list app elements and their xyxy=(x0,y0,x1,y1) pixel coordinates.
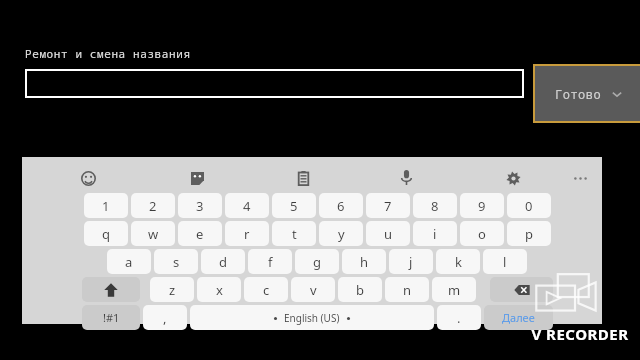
button[interactable]: p xyxy=(507,221,551,246)
staticText: h xyxy=(360,253,369,271)
staticText: Готово xyxy=(555,86,602,102)
staticText: Далее xyxy=(502,310,535,325)
staticText: v xyxy=(310,281,317,299)
button[interactable]: b xyxy=(338,277,382,302)
staticText: English (US) xyxy=(284,311,340,325)
button[interactable]: z xyxy=(150,277,194,302)
button[interactable]: !#1 xyxy=(82,305,140,330)
staticText: q xyxy=(102,225,110,243)
staticText: t xyxy=(292,225,297,243)
staticText: 7 xyxy=(384,197,392,215)
staticText: x xyxy=(216,281,223,299)
staticText: 9 xyxy=(478,197,486,215)
button[interactable]: 9 xyxy=(460,193,504,218)
staticText: 0 xyxy=(525,197,533,215)
button[interactable]: f xyxy=(248,249,292,274)
staticText: u xyxy=(384,225,393,243)
button[interactable]: , xyxy=(143,305,187,330)
button[interactable]: 5 xyxy=(272,193,316,218)
staticText: m xyxy=(448,281,461,299)
button[interactable]: 2 xyxy=(131,193,175,218)
button[interactable]: Далее xyxy=(484,305,553,330)
staticText: 3 xyxy=(196,197,204,215)
staticText: j xyxy=(409,253,413,271)
staticText: r xyxy=(244,225,250,243)
button[interactable]: c xyxy=(244,277,288,302)
staticText: l xyxy=(503,253,507,271)
button[interactable]: 4 xyxy=(225,193,269,218)
staticText: i xyxy=(433,225,437,243)
button[interactable]: 3 xyxy=(178,193,222,218)
button[interactable]: u xyxy=(366,221,410,246)
button[interactable]: Готово xyxy=(533,64,640,123)
button[interactable]: r xyxy=(225,221,269,246)
button[interactable]: j xyxy=(389,249,433,274)
staticText: f xyxy=(268,253,273,271)
button[interactable]: 6 xyxy=(319,193,363,218)
button[interactable]: t xyxy=(272,221,316,246)
staticText: k xyxy=(455,253,462,271)
button[interactable]: d xyxy=(201,249,245,274)
button[interactable]: Stickers xyxy=(184,165,210,191)
staticText: !#1 xyxy=(103,310,120,325)
button[interactable]: . xyxy=(437,305,481,330)
staticText: V RECORDER xyxy=(520,324,640,344)
staticText: s xyxy=(173,253,180,271)
staticText: 5 xyxy=(290,197,298,215)
staticText: d xyxy=(219,253,227,271)
button[interactable]: y xyxy=(319,221,363,246)
staticText: a xyxy=(125,253,133,271)
button[interactable]: 7 xyxy=(366,193,410,218)
button[interactable]: x xyxy=(197,277,241,302)
button[interactable]: l xyxy=(483,249,527,274)
button[interactable]: s xyxy=(154,249,198,274)
button[interactable]: i xyxy=(413,221,457,246)
button[interactable]: Settings xyxy=(500,165,526,191)
button[interactable]: Shift xyxy=(82,277,140,302)
staticText: g xyxy=(313,253,321,271)
button[interactable]: 1 xyxy=(84,193,128,218)
button[interactable]: g xyxy=(295,249,339,274)
button[interactable]: o xyxy=(460,221,504,246)
button[interactable]: More options xyxy=(567,165,593,191)
staticText: , xyxy=(163,309,167,327)
button[interactable]: Emoji xyxy=(75,165,101,191)
staticText: 6 xyxy=(337,197,345,215)
staticText: c xyxy=(263,281,270,299)
button[interactable]: q xyxy=(84,221,128,246)
button[interactable]: w xyxy=(131,221,175,246)
button[interactable]: n xyxy=(385,277,429,302)
button[interactable]: Backspace xyxy=(490,277,553,302)
button[interactable]: a xyxy=(107,249,151,274)
staticText: 2 xyxy=(149,197,157,215)
staticText: z xyxy=(169,281,176,299)
button[interactable]: Clipboard xyxy=(290,165,316,191)
staticText: 4 xyxy=(243,197,251,215)
staticText: 1 xyxy=(102,197,110,215)
button[interactable]: h xyxy=(342,249,386,274)
button[interactable]: English (US) xyxy=(190,305,434,330)
button[interactable]: m xyxy=(432,277,476,302)
button[interactable]: 8 xyxy=(413,193,457,218)
staticText: y xyxy=(338,225,345,243)
staticText: . xyxy=(457,309,461,327)
staticText: n xyxy=(403,281,412,299)
staticText: 8 xyxy=(431,197,439,215)
button[interactable]: e xyxy=(178,221,222,246)
staticText: Ремонт и смена названия xyxy=(25,46,191,61)
staticText: e xyxy=(196,225,204,243)
button[interactable]: v xyxy=(291,277,335,302)
staticText: p xyxy=(525,225,533,243)
button[interactable]: 0 xyxy=(507,193,551,218)
staticText: b xyxy=(356,281,364,299)
staticText: w xyxy=(148,225,159,243)
button[interactable] xyxy=(25,69,524,98)
button[interactable]: k xyxy=(436,249,480,274)
staticText: o xyxy=(478,225,486,243)
button[interactable]: Voice input xyxy=(393,164,419,190)
